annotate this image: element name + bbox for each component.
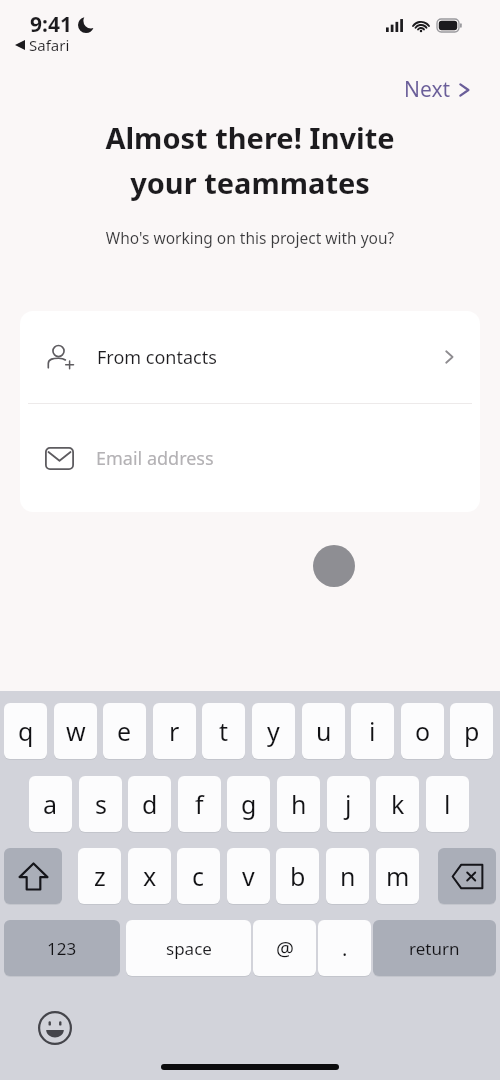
button[interactable]: g bbox=[227, 776, 270, 832]
staticText: Safari bbox=[29, 35, 70, 55]
staticText: l bbox=[444, 787, 451, 821]
button[interactable]: u bbox=[302, 703, 345, 759]
staticText: x bbox=[143, 859, 157, 893]
button[interactable]: m bbox=[376, 848, 419, 904]
button[interactable]: Backspace bbox=[438, 848, 496, 904]
staticText: 9:41 bbox=[30, 10, 72, 39]
button[interactable]: Email address bbox=[20, 404, 480, 512]
button[interactable]: p bbox=[450, 703, 493, 759]
staticText: c bbox=[192, 859, 205, 893]
staticText: a bbox=[43, 787, 58, 821]
staticText: Email address bbox=[96, 446, 214, 471]
staticText: f bbox=[195, 787, 204, 821]
button[interactable]: Safari bbox=[15, 35, 70, 55]
staticText: your teammates bbox=[30, 163, 470, 202]
staticText: g bbox=[241, 787, 257, 821]
staticText: s bbox=[95, 787, 107, 821]
staticText: Next bbox=[404, 75, 451, 104]
button[interactable]: o bbox=[401, 703, 444, 759]
button[interactable]: k bbox=[376, 776, 419, 832]
button[interactable]: Avatar bbox=[313, 545, 355, 587]
button[interactable]: i bbox=[351, 703, 394, 759]
staticText: j bbox=[345, 787, 352, 821]
button[interactable]: x bbox=[128, 848, 171, 904]
staticText: v bbox=[242, 859, 255, 893]
staticText: Who's working on this project with you? bbox=[30, 227, 470, 248]
staticText: n bbox=[340, 859, 356, 893]
button[interactable]: Shift bbox=[4, 848, 62, 904]
staticText: return bbox=[409, 937, 460, 960]
staticText: w bbox=[66, 714, 86, 748]
staticText: t bbox=[219, 714, 229, 748]
button[interactable]: space bbox=[126, 920, 251, 976]
button[interactable]: a bbox=[29, 776, 72, 832]
staticText: b bbox=[290, 859, 306, 893]
button[interactable]: From contacts bbox=[20, 311, 480, 403]
button[interactable]: v bbox=[227, 848, 270, 904]
staticText: From contacts bbox=[97, 345, 444, 370]
staticText: o bbox=[415, 714, 431, 748]
staticText: q bbox=[18, 714, 34, 748]
button[interactable]: j bbox=[327, 776, 370, 832]
button[interactable]: . bbox=[318, 920, 371, 976]
button[interactable]: c bbox=[177, 848, 220, 904]
staticText: y bbox=[267, 714, 280, 748]
button[interactable]: z bbox=[78, 848, 121, 904]
button[interactable]: d bbox=[128, 776, 171, 832]
button[interactable]: r bbox=[153, 703, 196, 759]
staticText: k bbox=[391, 787, 405, 821]
button[interactable]: f bbox=[178, 776, 221, 832]
button[interactable]: y bbox=[252, 703, 295, 759]
staticText: p bbox=[464, 714, 480, 748]
button[interactable]: b bbox=[276, 848, 319, 904]
button[interactable]: l bbox=[426, 776, 469, 832]
staticText: r bbox=[169, 714, 180, 748]
staticText: i bbox=[369, 714, 376, 748]
button[interactable]: h bbox=[277, 776, 320, 832]
staticText: u bbox=[316, 714, 332, 748]
button[interactable]: n bbox=[326, 848, 369, 904]
staticText: z bbox=[94, 859, 106, 893]
button[interactable]: 123 bbox=[4, 920, 120, 976]
staticText: @ bbox=[276, 935, 294, 962]
button[interactable]: t bbox=[202, 703, 245, 759]
staticText: space bbox=[166, 937, 212, 960]
staticText: d bbox=[142, 787, 158, 821]
button[interactable]: @ bbox=[253, 920, 316, 976]
button[interactable]: e bbox=[103, 703, 146, 759]
staticText: m bbox=[386, 859, 410, 893]
button[interactable]: s bbox=[79, 776, 122, 832]
staticText: e bbox=[117, 714, 132, 748]
staticText: . bbox=[342, 935, 348, 962]
button[interactable]: q bbox=[4, 703, 47, 759]
button[interactable]: return bbox=[373, 920, 496, 976]
button[interactable]: Emoji bbox=[34, 1007, 76, 1049]
staticText: Almost there! Invite bbox=[30, 118, 470, 157]
staticText: h bbox=[291, 787, 307, 821]
button[interactable]: w bbox=[54, 703, 97, 759]
button[interactable]: Next bbox=[398, 71, 477, 108]
staticText: 123 bbox=[47, 937, 77, 960]
